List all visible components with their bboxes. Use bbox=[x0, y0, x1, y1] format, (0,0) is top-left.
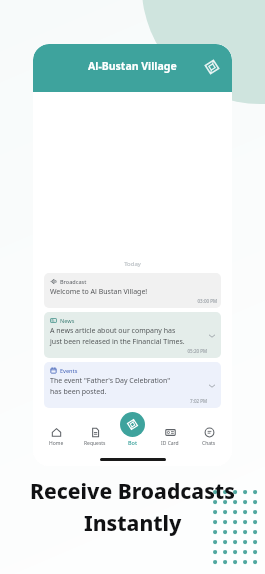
staticText: ID Card bbox=[161, 440, 179, 447]
staticText: 03:00 PM bbox=[50, 298, 217, 304]
button[interactable]: News bbox=[44, 312, 221, 358]
button[interactable]: Chats bbox=[193, 426, 225, 448]
button[interactable]: Requests bbox=[79, 426, 111, 448]
staticText: 05:20 PM bbox=[50, 348, 207, 354]
staticText: Broadcast bbox=[60, 278, 87, 285]
staticText: Requests bbox=[84, 440, 106, 447]
button[interactable]: App logo bbox=[202, 57, 222, 77]
staticText: A news article about our company has bbox=[50, 326, 176, 336]
button[interactable]: Bot bbox=[120, 412, 145, 446]
staticText: Chats bbox=[202, 440, 216, 447]
staticText: Home bbox=[49, 440, 64, 447]
staticText: Receive Broadcasts bbox=[30, 477, 235, 506]
staticText: Al-Bustan Village bbox=[88, 59, 177, 73]
staticText: Today bbox=[33, 260, 232, 268]
button[interactable]: Broadcast bbox=[44, 273, 221, 308]
staticText: 7:02 PM bbox=[50, 398, 207, 404]
other: Bot bbox=[120, 412, 145, 437]
button[interactable]: ID Card bbox=[154, 426, 186, 448]
staticText: Welcome to Al Bustan Village! bbox=[50, 287, 148, 297]
staticText: Events bbox=[60, 367, 78, 374]
staticText: just been released in the Financial Time… bbox=[50, 337, 185, 347]
button[interactable]: Events bbox=[44, 362, 221, 408]
staticText: The event "Father's Day Celebration" bbox=[50, 376, 171, 386]
staticText: Instantly bbox=[84, 509, 182, 538]
staticText: Bot bbox=[128, 439, 138, 446]
button[interactable]: Home bbox=[40, 426, 72, 448]
staticText: News bbox=[60, 317, 75, 324]
staticText: has been posted. bbox=[50, 387, 107, 397]
